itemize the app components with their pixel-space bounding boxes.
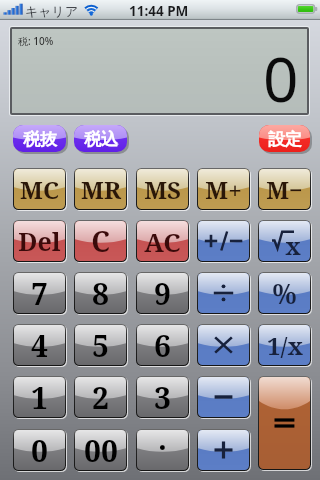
button[interactable]: 1/x [258,324,311,366]
staticText: MR [81,173,121,206]
staticText: 00 [84,430,118,471]
button[interactable] [197,376,250,418]
button[interactable] [197,429,250,471]
staticText: 11:44 PM [129,2,189,20]
button[interactable]: MS [136,168,189,210]
button[interactable]: 3 [136,376,189,418]
button[interactable]: 2 [74,376,127,418]
button[interactable] [197,272,250,314]
button[interactable]: 4 [13,324,66,366]
button[interactable]: 6 [136,324,189,366]
button[interactable]: 0 [13,429,66,471]
staticText: 3 [154,377,171,418]
staticText: M− [266,173,303,206]
button[interactable]: M− [258,168,311,210]
button[interactable]: C [74,220,127,262]
staticText: 税: 10% [18,34,54,48]
button[interactable]: 1 [13,376,66,418]
staticText: MS [144,173,181,206]
button[interactable] [197,324,250,366]
button[interactable] [197,220,250,262]
staticText: Del [18,224,61,258]
staticText: 1 [31,377,48,418]
button[interactable]: MC [13,168,66,210]
staticText: 0 [31,430,48,471]
staticText: 税込 [84,129,118,150]
staticText: 0 [263,36,299,115]
staticText: MC [20,173,59,206]
button[interactable]: % [258,272,311,314]
button[interactable]: · [136,429,189,471]
button[interactable]: MR [74,168,127,210]
button[interactable]: 00 [74,429,127,471]
staticText: % [272,275,297,312]
staticText: AC [144,224,181,259]
button[interactable]: M+ [197,168,250,210]
button[interactable]: Del [13,220,66,262]
button[interactable] [258,376,311,470]
button[interactable]: 税抜 [13,125,69,155]
staticText: 7 [31,273,48,314]
staticText: 6 [154,325,171,366]
staticText: x [285,229,301,262]
staticText: 1/x [267,329,303,362]
staticText: 5 [92,325,109,366]
staticText: 税抜 [23,129,57,150]
button[interactable]: 設定 [259,125,313,155]
button[interactable]: 税込 [74,125,130,155]
staticText: キャリア [25,3,79,19]
staticText: 8 [92,273,109,314]
staticText: M+ [205,173,242,206]
staticText: 2 [92,377,109,418]
button[interactable]: 5 [74,324,127,366]
button[interactable]: 7 [13,272,66,314]
button[interactable]: AC [136,220,189,262]
staticText: C [91,222,110,260]
staticText: 9 [154,273,171,314]
button[interactable]: x [258,220,311,262]
staticText: 設定 [268,129,302,150]
button[interactable]: 8 [74,272,127,314]
staticText: · [158,427,167,468]
staticText: 4 [31,325,48,366]
button[interactable]: 9 [136,272,189,314]
